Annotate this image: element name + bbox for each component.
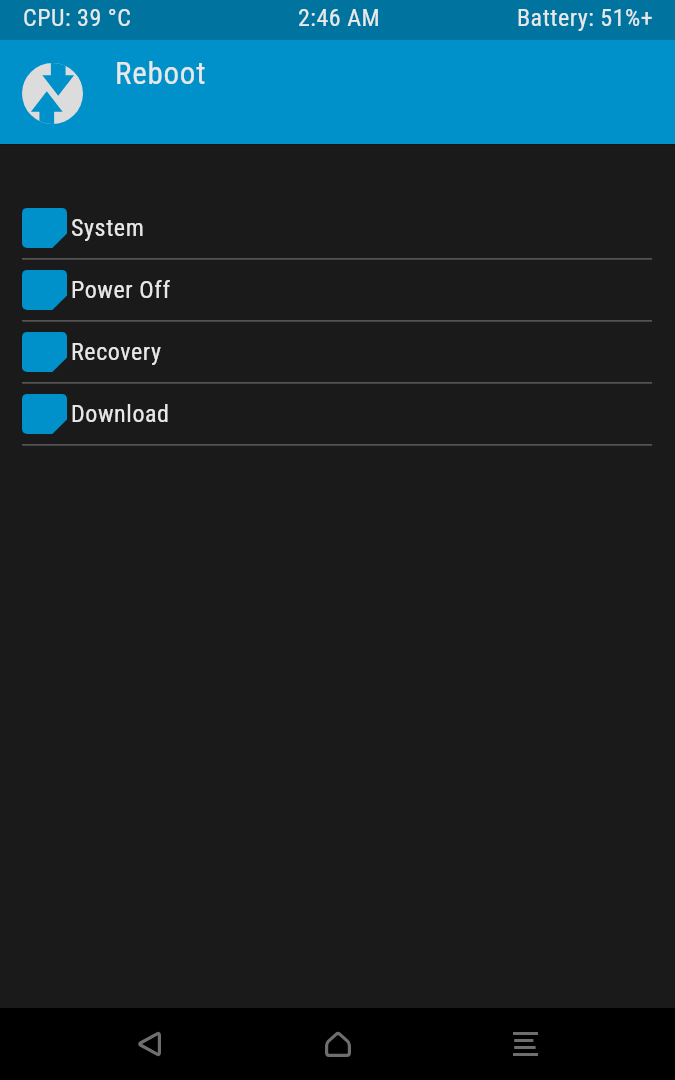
staticText: Battery: 51%+ bbox=[517, 4, 654, 32]
staticText: 2:46 AM bbox=[298, 4, 381, 32]
button[interactable]: Recovery bbox=[0, 322, 675, 382]
staticText: Download bbox=[71, 400, 170, 428]
button[interactable]: System bbox=[0, 198, 675, 258]
button[interactable]: Power Off bbox=[0, 260, 675, 320]
button[interactable]: Home bbox=[296, 1008, 380, 1080]
other: TWRP logo bbox=[22, 63, 83, 124]
staticText: System bbox=[71, 214, 145, 242]
staticText: CPU: 39 °C bbox=[23, 4, 132, 32]
button[interactable]: Download bbox=[0, 384, 675, 444]
staticText: Reboot bbox=[115, 55, 207, 91]
staticText: Recovery bbox=[71, 338, 162, 366]
button[interactable]: Back bbox=[107, 1008, 191, 1080]
staticText: Power Off bbox=[71, 276, 171, 304]
button[interactable]: Recent apps bbox=[483, 1008, 567, 1080]
